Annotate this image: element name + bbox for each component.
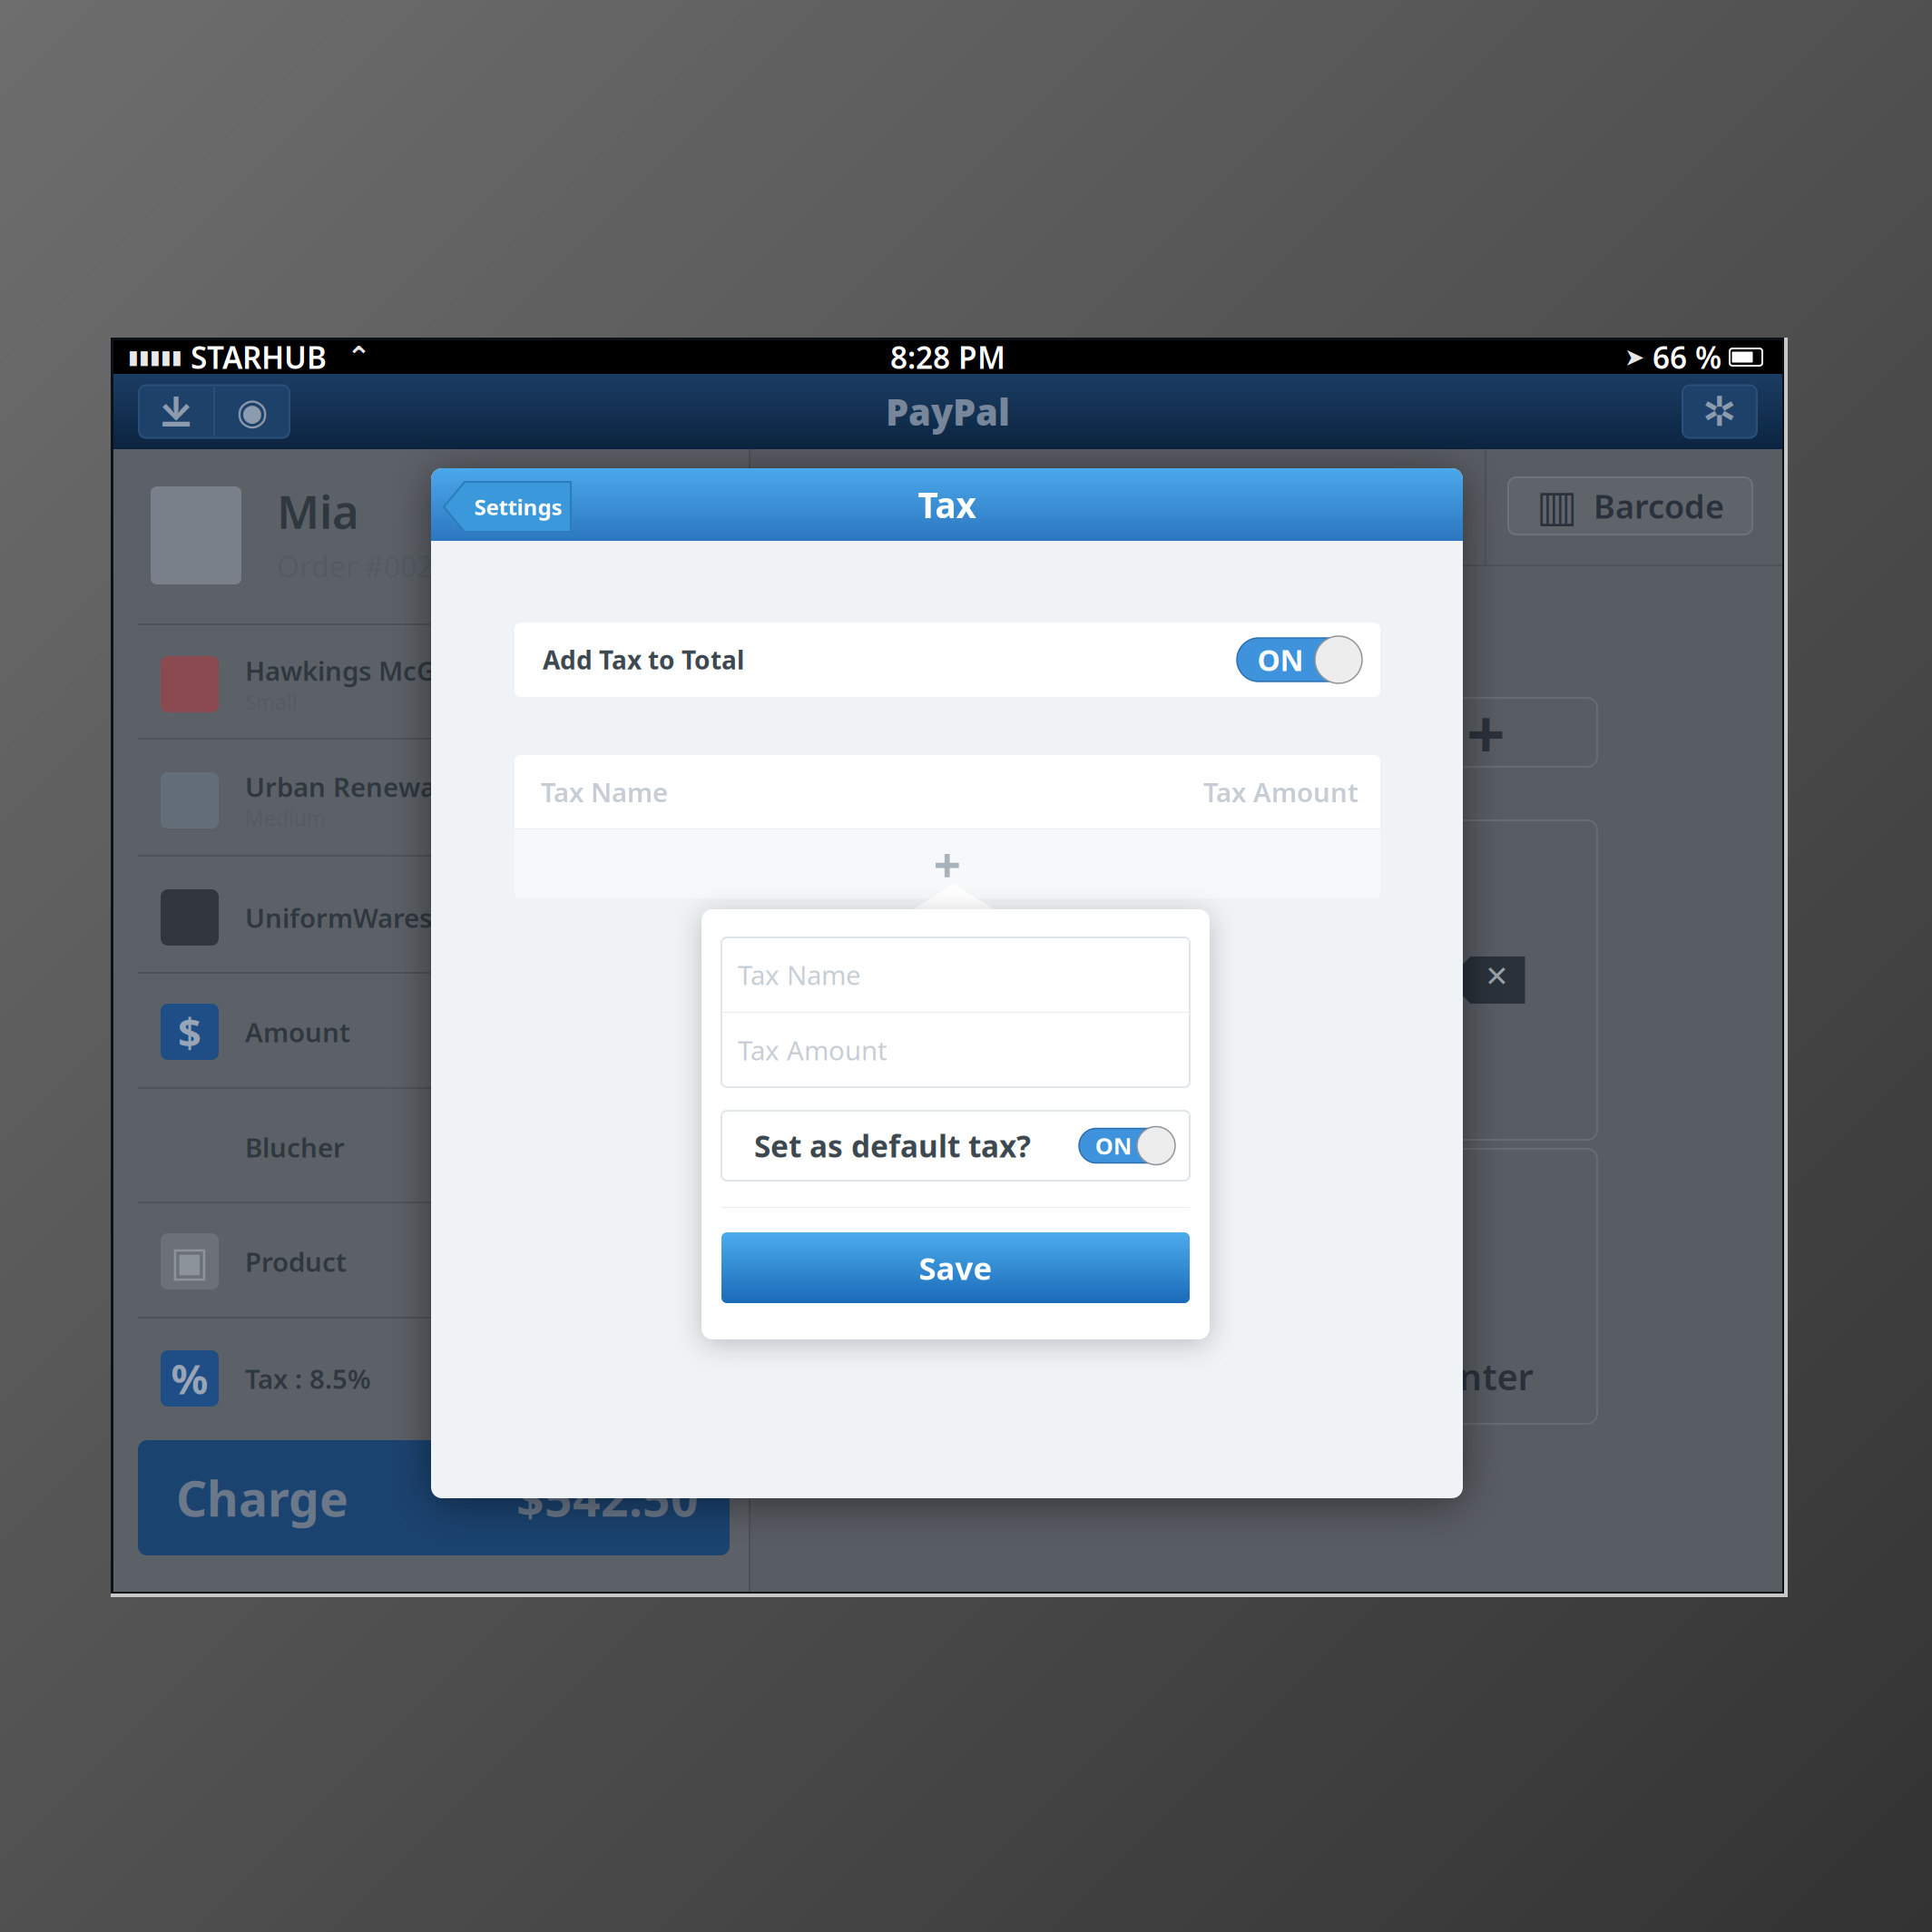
staticText: Blucher bbox=[245, 1129, 345, 1165]
staticText: ➤ bbox=[1624, 343, 1644, 371]
button[interactable]: Save bbox=[721, 1232, 1190, 1303]
staticText: ✕ bbox=[1485, 960, 1509, 993]
button[interactable]: Settings bbox=[1682, 385, 1757, 438]
staticText: ▥ bbox=[1536, 481, 1577, 531]
staticText: $ bbox=[178, 1004, 201, 1059]
staticText: ◉ bbox=[236, 391, 268, 432]
staticText: Add Tax to Total bbox=[543, 643, 744, 677]
staticText: ▣ bbox=[170, 1238, 209, 1285]
staticText: $542.50 bbox=[516, 1466, 699, 1530]
staticText: STARHUB bbox=[182, 337, 327, 377]
staticText: UniformWares 203 bbox=[245, 900, 485, 935]
button[interactable]: Customer location bbox=[215, 385, 289, 438]
button[interactable]: Settings bbox=[443, 481, 575, 533]
staticText: Tax Amount bbox=[1203, 774, 1358, 809]
staticText: Tax : 8.5% bbox=[245, 1361, 371, 1396]
button[interactable]: Charge bbox=[138, 1440, 730, 1555]
staticText: Barcode bbox=[1577, 484, 1724, 528]
staticText: ▮▮▮▮▮ bbox=[128, 346, 182, 368]
staticText: PayPal bbox=[886, 387, 1010, 436]
staticText: Hawkings McGill bbox=[245, 653, 457, 688]
staticText: 8:28 PM bbox=[890, 337, 1005, 377]
staticText: Tax Name bbox=[738, 957, 861, 992]
staticText: % bbox=[171, 1351, 208, 1406]
staticText: Mia bbox=[277, 480, 359, 541]
staticText: ✲ bbox=[1702, 388, 1737, 435]
staticText: Product bbox=[245, 1244, 347, 1279]
staticText: ⌃ bbox=[327, 341, 371, 374]
button[interactable]: ▥ bbox=[1508, 477, 1752, 534]
staticText: Save bbox=[919, 1247, 992, 1289]
staticText: Amount bbox=[245, 1014, 350, 1049]
staticText: Set as default tax? bbox=[754, 1126, 1031, 1166]
staticText: Settings bbox=[474, 492, 562, 521]
staticText: Tax bbox=[918, 481, 976, 528]
staticText: Order #0024 bbox=[277, 547, 449, 586]
staticText: + bbox=[933, 832, 961, 896]
staticText: 66 % bbox=[1644, 337, 1721, 377]
button[interactable]: Save order bbox=[139, 385, 213, 438]
staticText: ON bbox=[1095, 1130, 1132, 1161]
staticText: Urban Renewal bbox=[245, 769, 443, 804]
staticText: Enter bbox=[1439, 1352, 1533, 1400]
staticText: Charge bbox=[176, 1466, 348, 1530]
staticText: ⤓ bbox=[158, 387, 194, 436]
staticText: ON bbox=[1257, 640, 1304, 679]
staticText: Tax Name bbox=[541, 774, 668, 809]
staticText: Tax Amount bbox=[738, 1032, 888, 1068]
staticText: + bbox=[1466, 687, 1505, 777]
